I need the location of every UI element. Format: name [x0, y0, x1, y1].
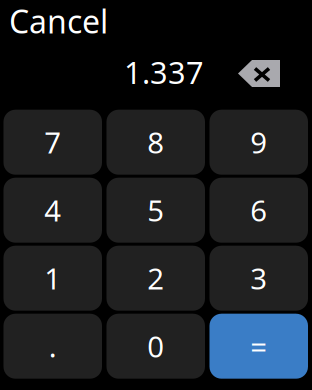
button[interactable]: . — [3, 314, 102, 379]
staticText: 4 — [44, 191, 61, 230]
staticText: = — [250, 327, 267, 366]
staticText: 9 — [250, 123, 267, 162]
button[interactable]: 6 — [209, 178, 308, 243]
staticText: 0 — [147, 327, 164, 366]
button[interactable]: 1 — [3, 246, 102, 311]
button[interactable]: 4 — [3, 178, 102, 243]
staticText: 1.337 — [124, 52, 204, 92]
button[interactable]: 9 — [209, 110, 308, 175]
button[interactable]: = — [209, 314, 308, 379]
button[interactable]: 5 — [106, 178, 205, 243]
staticText: 7 — [44, 123, 61, 162]
staticText: 8 — [147, 123, 164, 162]
button[interactable]: 8 — [106, 110, 205, 175]
staticText: . — [49, 327, 57, 366]
button[interactable]: 7 — [3, 110, 102, 175]
button[interactable]: Delete — [238, 60, 280, 87]
staticText: 5 — [147, 191, 164, 230]
staticText: 6 — [250, 191, 267, 230]
staticText: 3 — [250, 259, 267, 298]
button[interactable]: 2 — [106, 246, 205, 311]
staticText: 1 — [44, 259, 61, 298]
button[interactable]: Cancel — [9, 8, 109, 34]
button[interactable]: 3 — [209, 246, 308, 311]
staticText: 2 — [147, 259, 164, 298]
staticText: Cancel — [9, 0, 108, 42]
button[interactable]: 0 — [106, 314, 205, 379]
